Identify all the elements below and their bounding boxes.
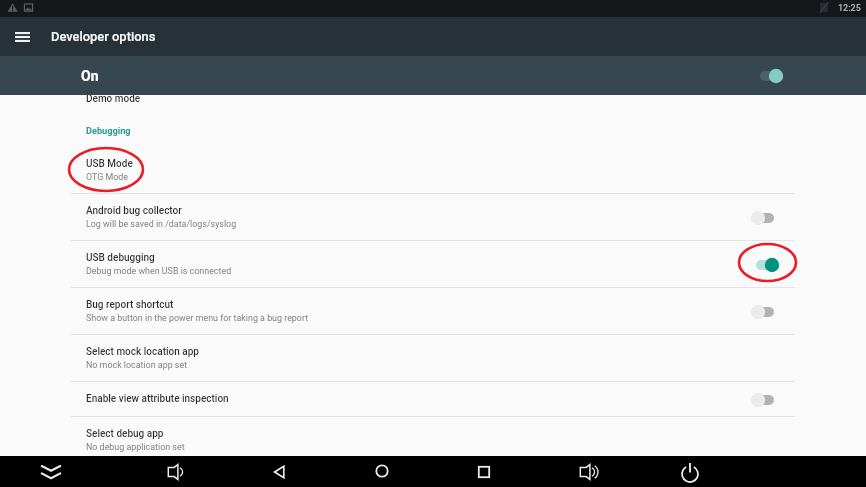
button[interactable]: Power (668, 456, 712, 487)
staticText: Bug report shortcut (86, 299, 174, 311)
button[interactable]: Demo mode (0, 95, 866, 117)
button[interactable]: Volume down (153, 456, 197, 487)
staticText: Select debug app (86, 428, 164, 440)
staticText: USB debugging (86, 252, 155, 264)
button[interactable]: Select debug app (0, 417, 866, 456)
button[interactable]: Open navigation drawer (6, 20, 39, 53)
staticText: Android bug collector (86, 205, 182, 217)
staticText: Developer options (51, 29, 156, 44)
button[interactable]: Bug report shortcut (0, 288, 866, 335)
staticText: OTG Mode (86, 172, 129, 182)
button[interactable]: Enable view attribute inspection (0, 382, 866, 417)
staticText: Select mock location app (86, 346, 199, 358)
staticText: No debug application set (86, 442, 185, 452)
staticText: No mock location app set (86, 360, 188, 370)
button[interactable]: On (0, 56, 866, 95)
button[interactable]: Hide keyboard (29, 456, 73, 487)
button[interactable]: Android bug collector (0, 194, 866, 241)
staticText: Show a button in the power menu for taki… (86, 313, 309, 323)
button[interactable]: USB debugging (0, 241, 866, 288)
staticText: Enable view attribute inspection (86, 393, 229, 405)
button[interactable]: Volume up (565, 456, 609, 487)
staticText: Debug mode when USB is connected (86, 266, 232, 276)
button[interactable]: Recent apps (462, 456, 506, 487)
button[interactable]: USB Mode (0, 147, 866, 194)
button[interactable]: Back (258, 456, 302, 487)
staticText: 12:25 (838, 3, 861, 14)
button[interactable]: Home (359, 456, 403, 487)
staticText: Demo mode (86, 95, 141, 105)
staticText: On (81, 68, 99, 84)
staticText: Log will be saved in /data/logs/syslog (86, 219, 237, 229)
staticText: Debugging (86, 125, 131, 136)
staticText: USB Mode (86, 158, 133, 170)
button[interactable]: Select mock location app (0, 335, 866, 382)
